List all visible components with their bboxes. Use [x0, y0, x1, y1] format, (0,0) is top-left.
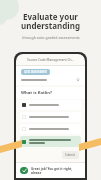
staticText: QUIZ ASSESSMENT — [24, 70, 47, 74]
staticText: Evaluate your understanding — [21, 11, 80, 32]
button[interactable]: QUIZ ASSESSMENT — [24, 70, 47, 74]
button[interactable] — [20, 124, 81, 134]
staticText: Source Code Management Ch… — [27, 58, 75, 62]
staticText: Submit — [65, 153, 76, 157]
button[interactable] — [20, 136, 81, 147]
staticText: Great job! You got it right, please chec… — [31, 167, 81, 174]
button[interactable]: Great job! You got it right, please chec… — [16, 163, 85, 178]
button[interactable] — [20, 100, 81, 110]
button[interactable]: Source Code Management Ch… — [16, 54, 85, 65]
button[interactable]: Submit — [62, 151, 79, 159]
staticText: through auto-graded assessments — [22, 35, 80, 40]
button[interactable] — [20, 112, 81, 122]
staticText: What is Kotlin? — [21, 90, 53, 96]
